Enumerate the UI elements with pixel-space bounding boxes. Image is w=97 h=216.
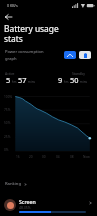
staticText: 04	[56, 155, 60, 159]
staticText: Now	[83, 155, 90, 159]
staticText: mins	[27, 80, 36, 84]
staticText: Ranking	[5, 181, 22, 187]
staticText: hrs	[63, 80, 70, 84]
staticText: 5	[6, 75, 11, 85]
button[interactable]: Graph view	[64, 51, 76, 59]
staticText: hrs	[11, 80, 18, 84]
staticText: Active	[5, 71, 15, 76]
staticText: 25%	[4, 135, 11, 139]
staticText: 16	[16, 155, 20, 159]
staticText: 0 KB/s	[7, 3, 18, 8]
staticText: 00	[42, 155, 46, 159]
button[interactable]: Back	[1, 10, 16, 23]
staticText: 50%	[4, 121, 11, 125]
staticText: Power consumption graph	[5, 49, 44, 61]
staticText: 75%	[4, 108, 11, 112]
staticText: Screen	[19, 198, 36, 205]
staticText: 20	[29, 155, 33, 159]
button[interactable]: Screen	[0, 194, 97, 216]
staticText: 48.35%	[19, 205, 31, 210]
staticText: Battery usage stats	[4, 23, 59, 44]
staticText: 57	[18, 75, 27, 85]
staticText: 100%	[4, 95, 13, 99]
staticText: 0%	[4, 148, 9, 152]
staticText: 9	[58, 75, 63, 85]
staticText: Standby	[72, 71, 85, 76]
button[interactable]: Ranking	[5, 181, 27, 187]
button[interactable]: Battery usage list	[79, 51, 91, 59]
staticText: 50	[70, 75, 79, 85]
staticText: 08	[70, 155, 74, 159]
staticText: mins	[79, 80, 88, 84]
